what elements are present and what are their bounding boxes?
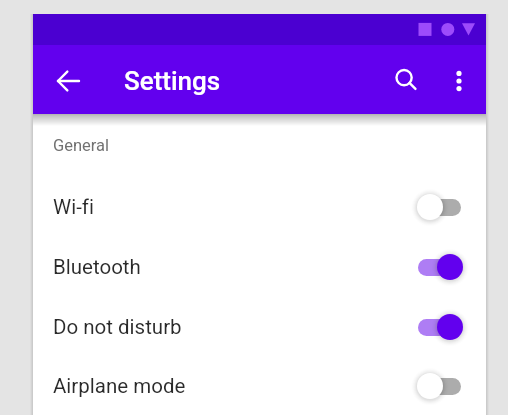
- staticText: Bluetooth: [53, 255, 141, 279]
- staticText: Wi-fi: [53, 195, 94, 219]
- staticText: Settings: [124, 66, 221, 96]
- button[interactable]: More options: [436, 58, 482, 104]
- button[interactable]: Bluetooth: [33, 237, 486, 297]
- button[interactable]: Wi-fi: [33, 177, 486, 237]
- button[interactable]: Do not disturb: [33, 297, 486, 357]
- staticText: Airplane mode: [53, 374, 186, 398]
- button[interactable]: Airplane mode: [33, 357, 486, 415]
- staticText: General: [53, 136, 110, 154]
- button[interactable]: Navigate back: [45, 58, 91, 104]
- staticText: Do not disturb: [53, 315, 182, 339]
- button[interactable]: Search: [383, 57, 429, 103]
